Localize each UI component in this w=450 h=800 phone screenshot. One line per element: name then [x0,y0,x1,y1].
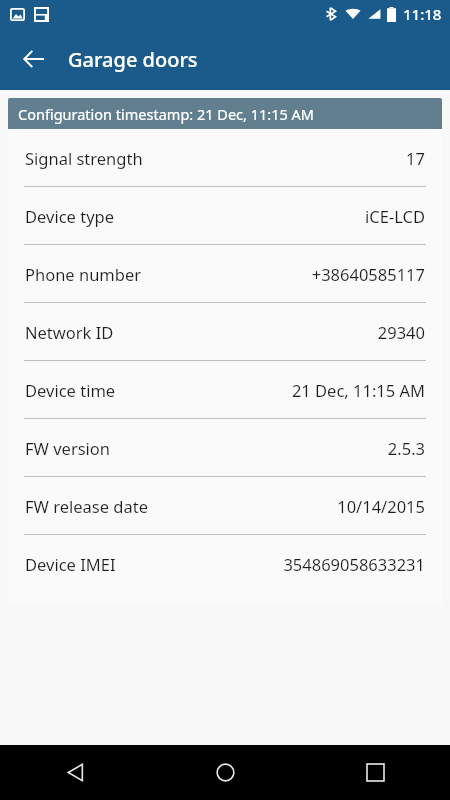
button[interactable]: FW release date [8,477,442,534]
button[interactable]: Recent apps [300,745,450,800]
staticText: 2.5.3 [387,437,425,459]
button[interactable]: Back [0,745,150,800]
staticText: Garage doors [68,46,198,73]
staticText: Device type [25,205,115,227]
staticText: Signal strength [25,147,143,169]
button[interactable]: Signal strength [8,129,442,186]
button[interactable]: Device IMEI [8,535,442,592]
staticText: Network ID [25,321,114,343]
button[interactable]: FW version [8,419,442,476]
staticText: 21 Dec, 11:15 AM [291,379,425,401]
staticText: 29340 [377,321,425,343]
staticText: FW version [25,437,111,459]
staticText: Phone number [25,263,142,285]
staticText: 10/14/2015 [337,495,425,517]
button[interactable]: Phone number [8,245,442,302]
button[interactable]: Device type [8,187,442,244]
staticText: FW release date [25,495,148,517]
staticText: +38640585117 [311,263,425,285]
button[interactable]: Home [150,745,300,800]
staticText: Configuration timestamp: 21 Dec, 11:15 A… [18,104,314,124]
staticText: 354869058633231 [283,553,425,575]
staticText: 17 [406,147,425,169]
button[interactable]: Network ID [8,303,442,360]
button[interactable]: Back [12,37,56,81]
button[interactable]: Device time [8,361,442,418]
staticText: iCE-LCD [365,205,425,227]
staticText: 11:18 [403,4,442,24]
staticText: Device time [25,379,116,401]
staticText: Device IMEI [25,553,116,575]
